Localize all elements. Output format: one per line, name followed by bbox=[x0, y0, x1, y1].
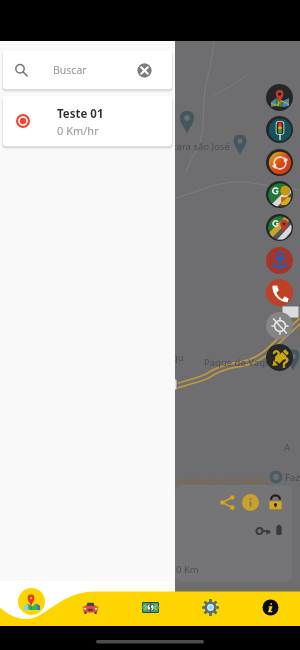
button[interactable]: Key bbox=[252, 520, 274, 542]
staticText: Faz bbox=[285, 471, 300, 484]
button[interactable]: Refresh bbox=[266, 149, 293, 176]
button[interactable]: Clear search bbox=[137, 63, 152, 78]
staticText: Buscar bbox=[53, 63, 87, 77]
button[interactable]: Anchor bbox=[266, 247, 293, 274]
staticText: cara são José bbox=[172, 140, 230, 153]
staticText: hurrascaria Timbaúba bbox=[171, 474, 270, 487]
staticText: 0 Km/hr bbox=[57, 123, 99, 138]
staticText: Teste 01 bbox=[57, 106, 104, 122]
button[interactable]: Teste 01 bbox=[3, 96, 172, 146]
staticText: Paque de Vaqu bbox=[204, 356, 271, 369]
staticText: 0 Km bbox=[176, 563, 199, 576]
button[interactable]: Vehicles bbox=[60, 593, 120, 621]
button[interactable]: Google maps bbox=[266, 214, 293, 241]
button[interactable]: Share bbox=[215, 490, 239, 514]
button[interactable]: Map type bbox=[266, 84, 293, 111]
button[interactable]: Buscar bbox=[3, 51, 172, 89]
button[interactable]: Disable GPS bbox=[266, 312, 293, 339]
button[interactable]: Street view bbox=[266, 181, 293, 208]
staticText: qu bbox=[172, 351, 184, 364]
button[interactable]: Settings bbox=[180, 593, 240, 621]
button[interactable]: Battery bbox=[269, 520, 289, 540]
button[interactable]: Payments bbox=[120, 593, 180, 621]
button[interactable]: Lock bbox=[263, 490, 287, 514]
button[interactable]: Map bbox=[18, 588, 45, 615]
button[interactable]: Call bbox=[266, 279, 293, 306]
staticText: A bbox=[284, 441, 291, 454]
button[interactable]: Information bbox=[238, 490, 262, 514]
button[interactable]: Info bbox=[240, 593, 300, 621]
button[interactable]: Traffic bbox=[266, 116, 293, 143]
button[interactable]: Edit bbox=[266, 344, 293, 371]
